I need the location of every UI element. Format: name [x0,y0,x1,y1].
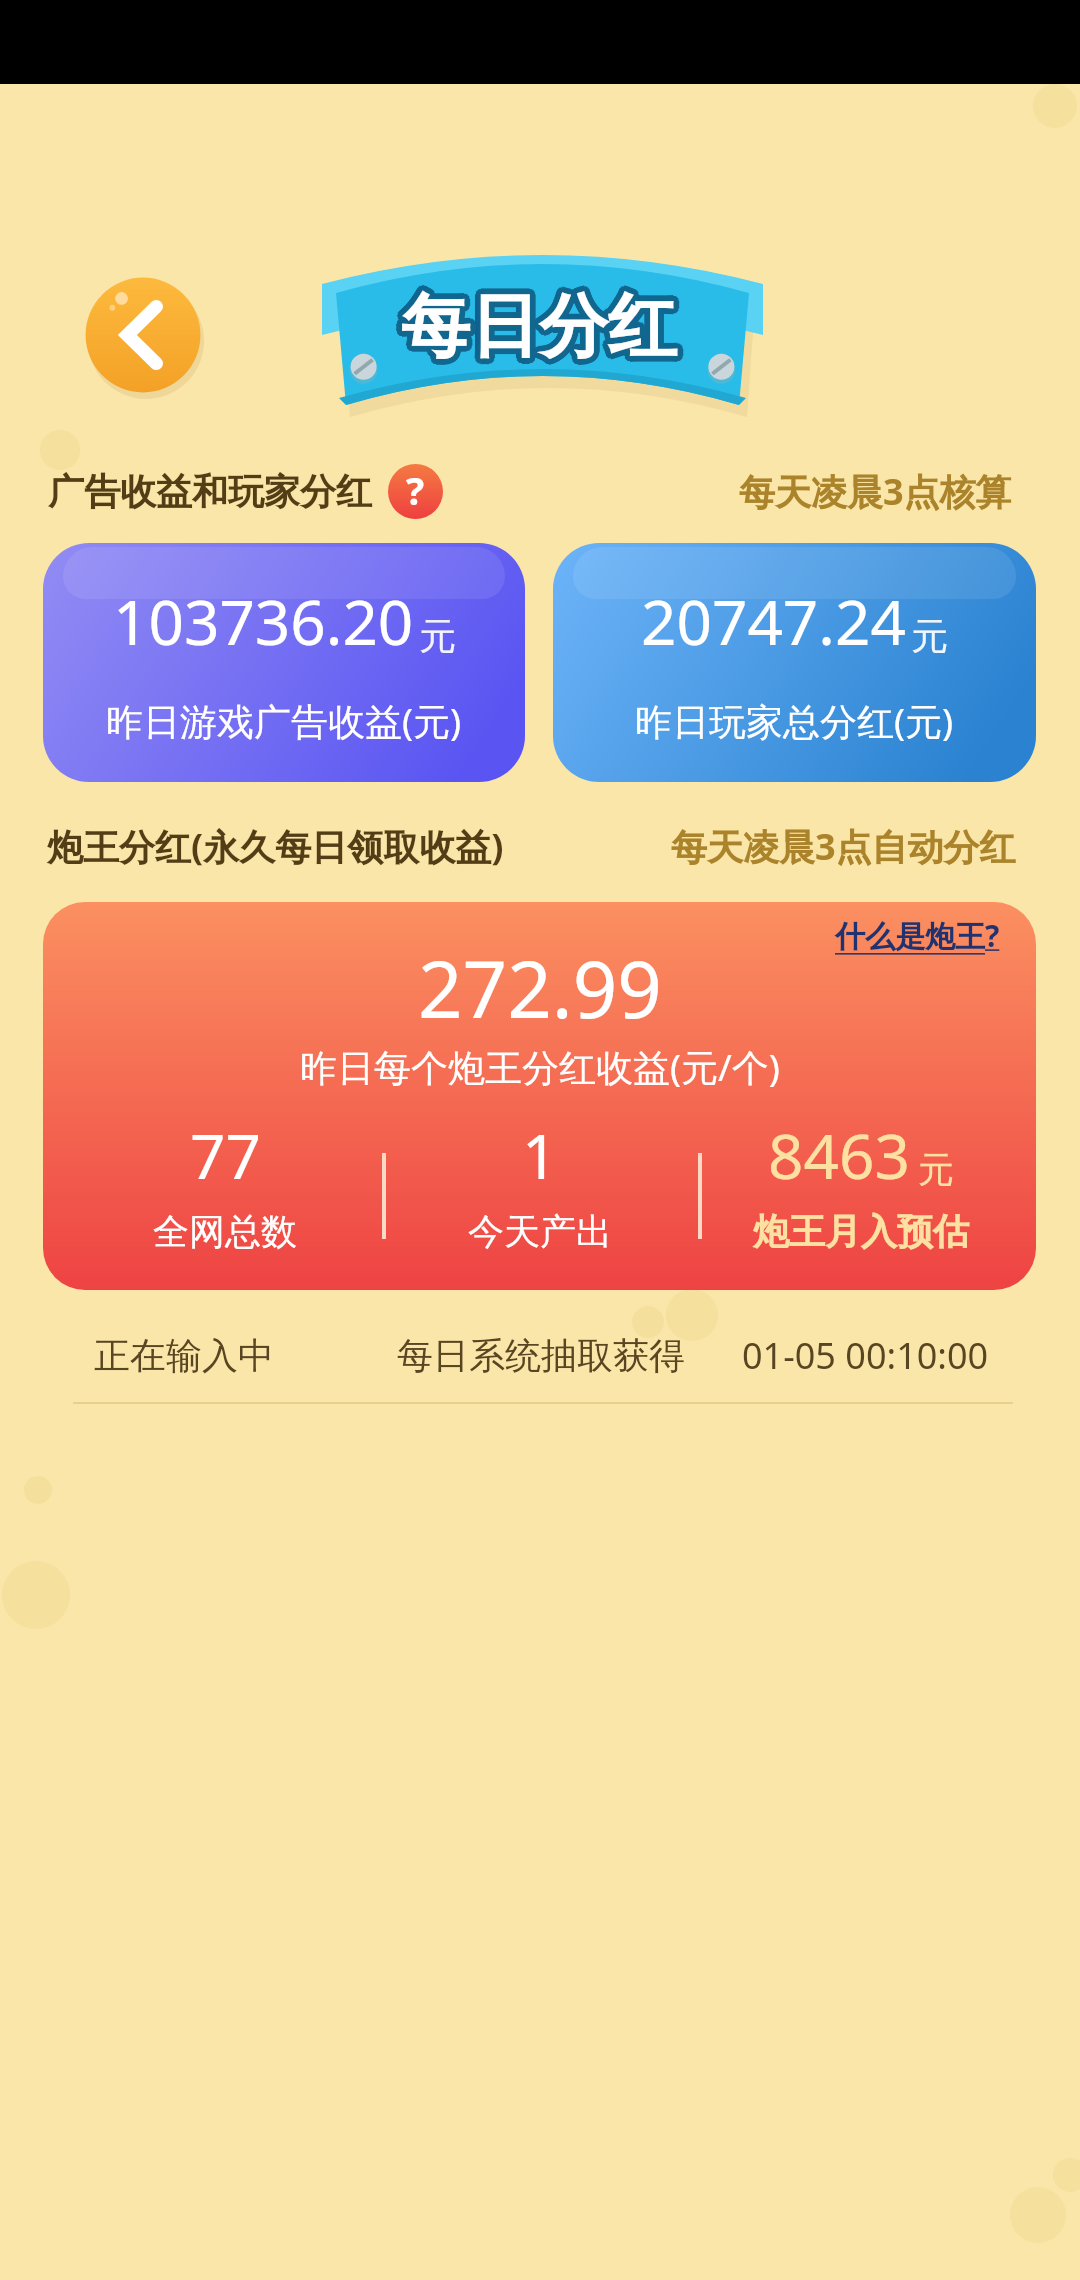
staticText: 每日分红 [405,287,681,374]
staticText: 每日分红 [405,283,681,370]
staticText: 每日分红 [401,278,677,365]
staticText: 每日分红 [397,281,673,368]
staticText: 每日分红 [402,279,678,366]
staticText: 每日分红 [406,286,682,373]
staticText: 每日分红 [398,280,674,367]
staticText: 每日分红 [405,280,681,367]
staticText: 每日分红 [406,284,682,371]
staticText: 每日分红 [404,288,680,375]
staticText: 每日分红 [396,283,672,370]
button[interactable]: 什么是炮王? [835,915,1000,956]
staticText: 每日分红 [398,287,674,374]
staticText: 每天凌晨3点自动分红 [671,822,1016,871]
staticText: 每日分红 [396,284,672,371]
staticText: 每日分红 [397,285,673,372]
staticText: 每日分红 [405,285,681,372]
staticText: 每日分红 [403,280,679,367]
staticText: 每日分红 [397,287,673,374]
staticText: ? [406,464,425,516]
staticText: 正在输入中 [94,1333,274,1378]
staticText: 每日分红 [398,289,674,376]
staticText: 每日分红 [399,280,675,367]
staticText: 元 [911,613,948,660]
staticText: 每日分红 [396,282,672,369]
staticText: 炮王月入预估 [753,1209,969,1254]
staticText: 每日分红 [400,279,676,366]
staticText: 每日分红 [406,285,682,372]
staticText: 每日分红 [405,284,681,371]
staticText: 昨日每个炮王分红收益(元/个) [300,1041,780,1092]
staticText: 20747.24 [641,579,906,663]
staticText: 272.99 [418,935,662,1041]
staticText: 每日分红 [396,281,672,368]
staticText: 每日分红 [399,288,675,375]
staticText: 每日系统抽取获得 [397,1333,685,1378]
staticText: 每日分红 [397,282,673,369]
staticText: 1 [522,1113,558,1197]
button[interactable]: 20747.24 [553,543,1036,782]
staticText: 每日分红 [404,281,680,368]
staticText: 每日分红 [400,289,676,376]
staticText: 每日分红 [405,282,681,369]
staticText: 01-05 00:10:00 [742,1331,989,1380]
staticText: 元 [918,1147,954,1192]
staticText: 昨日玩家总分红(元) [635,695,954,746]
staticText: 每日分红 [397,288,673,375]
staticText: 每日分红 [404,280,680,367]
staticText: 每日分红 [400,288,676,375]
staticText: 每日分红 [407,284,683,371]
staticText: 每日分红 [401,279,677,366]
button[interactable]: 103736.20 [43,543,525,782]
staticText: 广告收益和玩家分红 [48,469,372,514]
staticText: 每日分红 [396,286,672,373]
staticText: 每日分红 [405,288,681,375]
button[interactable]: Back [85,277,201,393]
staticText: 元 [419,613,456,660]
staticText: 每日分红 [398,288,674,375]
staticText: 什么是炮王? [835,915,1000,956]
staticText: 8463 [768,1113,910,1197]
staticText: 每日分红 [398,281,674,368]
staticText: 今天产出 [468,1209,612,1254]
staticText: 每日分红 [403,279,679,366]
staticText: 每日分红 [402,288,678,375]
staticText: 每日分红 [401,280,677,367]
staticText: 炮王分红(永久每日领取收益) [47,822,504,871]
staticText: 每日分红 [402,289,678,376]
staticText: 每日分红 [401,290,677,377]
staticText: 每日分红 [397,286,673,373]
staticText: 每天凌晨3点核算 [739,467,1012,516]
staticText: 每日分红 [406,283,682,370]
staticText: 每日分红 [399,279,675,366]
staticText: 每日分红 [401,289,677,376]
staticText: 每日分红 [396,285,672,372]
staticText: 每日分红 [397,283,673,370]
staticText: 每日分红 [404,279,680,366]
staticText: 每日分红 [402,280,678,367]
staticText: 每日分红 [396,287,672,374]
staticText: 每日分红 [406,281,682,368]
button[interactable]: 什么是炮王? [43,902,1036,1290]
staticText: 每日分红 [404,287,680,374]
staticText: 每日分红 [403,288,679,375]
staticText: 每日分红 [401,288,677,375]
staticText: 每日分红 [403,289,679,376]
staticText: 昨日游戏广告收益(元) [106,695,462,746]
staticText: 每日分红 [399,289,675,376]
staticText: 全网总数 [153,1209,297,1254]
staticText: 每日分红 [405,286,681,373]
staticText: 每日分红 [398,279,674,366]
staticText: 77 [190,1113,261,1197]
staticText: 每日分红 [405,281,681,368]
staticText: 每日分红 [406,287,682,374]
staticText: 每日分红 [397,284,673,371]
staticText: 每日分红 [400,280,676,367]
button[interactable]: 正在输入中 [0,1306,1080,1404]
staticText: 每日分红 [397,280,673,367]
staticText: 每日分红 [401,284,677,371]
staticText: 每日分红 [404,289,680,376]
button[interactable]: Help [388,464,443,519]
staticText: 每日分红 [406,282,682,369]
staticText: 每日分红 [395,284,671,371]
staticText: 103736.20 [113,579,414,663]
